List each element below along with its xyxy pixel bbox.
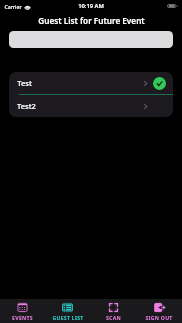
staticText: Guest List for Future Event <box>38 15 145 26</box>
button[interactable]: SIGN OUT <box>136 299 182 323</box>
staticText: Test <box>17 78 32 88</box>
staticText: Test2 <box>17 101 36 111</box>
button[interactable]: EVENTS <box>0 299 45 323</box>
button[interactable]: GUEST LIST <box>45 299 90 323</box>
button[interactable]: SCAN <box>90 299 136 323</box>
staticText: Carrier <box>4 3 22 10</box>
staticText: EVENTS <box>12 314 33 321</box>
button[interactable]: Test2 <box>9 95 173 117</box>
staticText: GUEST LIST <box>52 314 84 321</box>
button[interactable]: Search guests <box>9 31 173 48</box>
staticText: SCAN <box>106 314 121 321</box>
staticText: SIGN OUT <box>145 314 173 321</box>
button[interactable]: Test <box>9 72 173 94</box>
staticText: 10:19 AM <box>78 2 104 10</box>
